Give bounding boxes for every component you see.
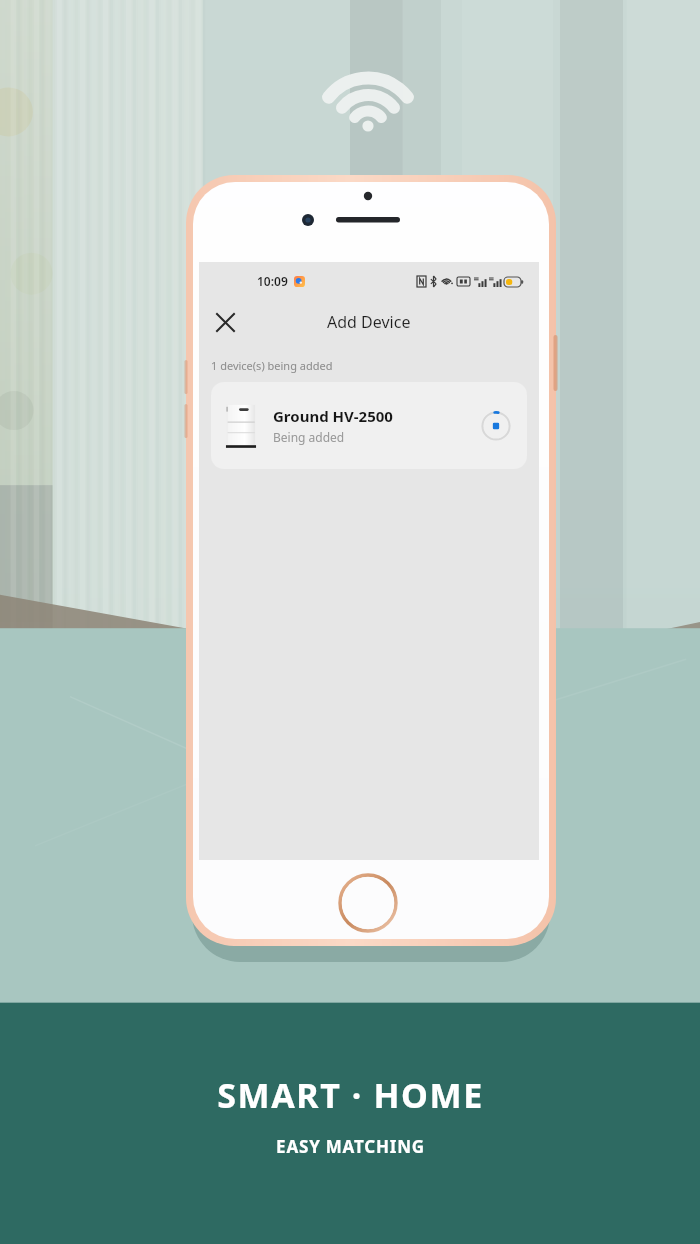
button[interactable]: Adding device progress	[479, 409, 513, 443]
staticText: EASY MATCHING	[276, 1135, 425, 1158]
button[interactable]: Ground HV-2500	[211, 382, 527, 469]
staticText: 10:09	[257, 273, 288, 289]
button[interactable]: Close	[207, 304, 243, 340]
staticText: 1 device(s) being added	[211, 358, 333, 373]
staticText: Being added	[273, 429, 345, 445]
staticText: Add Device	[327, 311, 411, 333]
staticText: Ground HV-2500	[273, 406, 393, 426]
staticText: SMART · HOME	[217, 1072, 484, 1118]
